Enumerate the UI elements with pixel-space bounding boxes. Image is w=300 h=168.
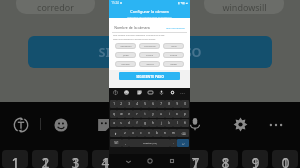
- button[interactable]: Voice input: [188, 117, 202, 131]
- button[interactable]: ⌫: [177, 129, 189, 137]
- staticText: 1: [41, 153, 50, 168]
- button[interactable]: Entrada: [115, 61, 136, 67]
- button[interactable]: a: [110, 119, 117, 127]
- button[interactable]: v: [145, 129, 153, 137]
- button[interactable]: 9: [173, 100, 181, 108]
- button[interactable]: 8: [165, 100, 173, 108]
- button[interactable]: Habitación: [115, 43, 136, 49]
- button[interactable]: Salón: [163, 43, 184, 49]
- button[interactable]: e: [125, 110, 133, 118]
- button[interactable]: !#1: [110, 139, 122, 147]
- button[interactable]: k: [165, 119, 173, 127]
- button[interactable]: y: [149, 110, 157, 118]
- button[interactable]: n: [161, 129, 169, 137]
- staticText: a: [113, 121, 115, 125]
- button[interactable]: Emoji: [54, 118, 68, 132]
- button[interactable]: más información: [166, 26, 185, 29]
- staticText: ↵: [182, 142, 185, 145]
- button[interactable]: Settings: [170, 90, 175, 95]
- button[interactable]: Back: [125, 158, 132, 165]
- button[interactable]: Recents: [169, 158, 175, 164]
- button[interactable]: 5: [141, 100, 149, 108]
- button[interactable]: Cocina: [139, 52, 160, 58]
- button[interactable]: r: [133, 110, 141, 118]
- button[interactable]: 1: [92, 150, 118, 168]
- button[interactable]: 0: [181, 100, 189, 108]
- button[interactable]: Translate: [113, 90, 118, 95]
- staticText: 2: [120, 102, 122, 106]
- button[interactable]: 1: [152, 150, 178, 168]
- button[interactable]: x: [129, 129, 137, 137]
- button[interactable]: q: [110, 110, 117, 118]
- button[interactable]: Settings: [233, 117, 248, 132]
- button[interactable]: d: [125, 119, 133, 127]
- button[interactable]: 3: [125, 100, 133, 108]
- button[interactable]: p: [181, 110, 189, 118]
- button[interactable]: h: [149, 119, 157, 127]
- button[interactable]: f: [133, 119, 141, 127]
- button[interactable]: Stickers: [137, 90, 142, 95]
- button[interactable]: SIGUIENTE PASO: [28, 36, 272, 68]
- button[interactable]: Puerta: [163, 52, 184, 58]
- button[interactable]: 1: [62, 150, 88, 168]
- button[interactable]: z: [121, 129, 129, 137]
- staticText: e: [128, 112, 130, 116]
- button[interactable]: w: [117, 110, 125, 118]
- button[interactable]: 1: [122, 150, 148, 168]
- staticText: Español (US): [143, 142, 157, 145]
- button[interactable]: Stickers: [97, 118, 111, 132]
- button[interactable]: Translate: [13, 117, 29, 133]
- button[interactable]: 1: [212, 150, 238, 168]
- button[interactable]: 1: [110, 100, 117, 108]
- button[interactable]: corredor: [16, 0, 95, 14]
- button[interactable]: 6: [149, 100, 157, 108]
- button[interactable]: g: [141, 119, 149, 127]
- button[interactable]: s: [117, 119, 125, 127]
- button[interactable]: Emoji: [124, 90, 129, 95]
- staticText: 9: [176, 102, 178, 106]
- button[interactable]: Español (US): [129, 139, 170, 147]
- button[interactable]: j: [157, 119, 165, 127]
- staticText: i: [169, 112, 170, 116]
- button[interactable]: .: [170, 139, 177, 147]
- button[interactable]: Jardín: [115, 52, 136, 58]
- button[interactable]: i: [165, 110, 173, 118]
- button[interactable]: ↵: [177, 139, 189, 147]
- button[interactable]: t: [141, 110, 149, 118]
- button[interactable]: SIGUIENTE PASO: [119, 72, 180, 80]
- button[interactable]: 2: [117, 100, 125, 108]
- staticText: 8: [168, 102, 170, 106]
- button[interactable]: u: [157, 110, 165, 118]
- button[interactable]: 1: [182, 150, 208, 168]
- button[interactable]: l: [173, 119, 181, 127]
- button[interactable]: 1: [32, 150, 58, 168]
- button[interactable]: 4: [133, 100, 141, 108]
- button[interactable]: m: [169, 129, 177, 137]
- button[interactable]: More options: [180, 91, 185, 96]
- staticText: SIGUIENTE PASO: [136, 74, 164, 79]
- staticText: v: [148, 131, 150, 135]
- staticText: corredor: [37, 1, 74, 13]
- button[interactable]: GIF: [148, 90, 153, 95]
- button[interactable]: Voice input: [159, 90, 164, 95]
- button[interactable]: 1: [2, 150, 28, 168]
- staticText: 3: [128, 102, 130, 106]
- button[interactable]: c: [137, 129, 145, 137]
- staticText: Entrada: [121, 63, 130, 66]
- button[interactable]: ⬆: [110, 129, 121, 137]
- button[interactable]: windowsill: [204, 0, 284, 14]
- button[interactable]: ñ: [181, 119, 189, 127]
- button[interactable]: More options: [268, 117, 284, 133]
- button[interactable]: Dormitorio: [139, 43, 160, 49]
- button[interactable]: o: [173, 110, 181, 118]
- button[interactable]: 1: [272, 150, 298, 168]
- button[interactable]: Home: [147, 158, 153, 164]
- button[interactable]: 1: [242, 150, 268, 168]
- button[interactable]: ,: [122, 139, 129, 147]
- button[interactable]: 7: [157, 100, 165, 108]
- button[interactable]: Garaje: [163, 61, 184, 67]
- staticText: Salón: [171, 45, 177, 48]
- button[interactable]: b: [153, 129, 161, 137]
- button[interactable]: Oficina: [139, 61, 160, 67]
